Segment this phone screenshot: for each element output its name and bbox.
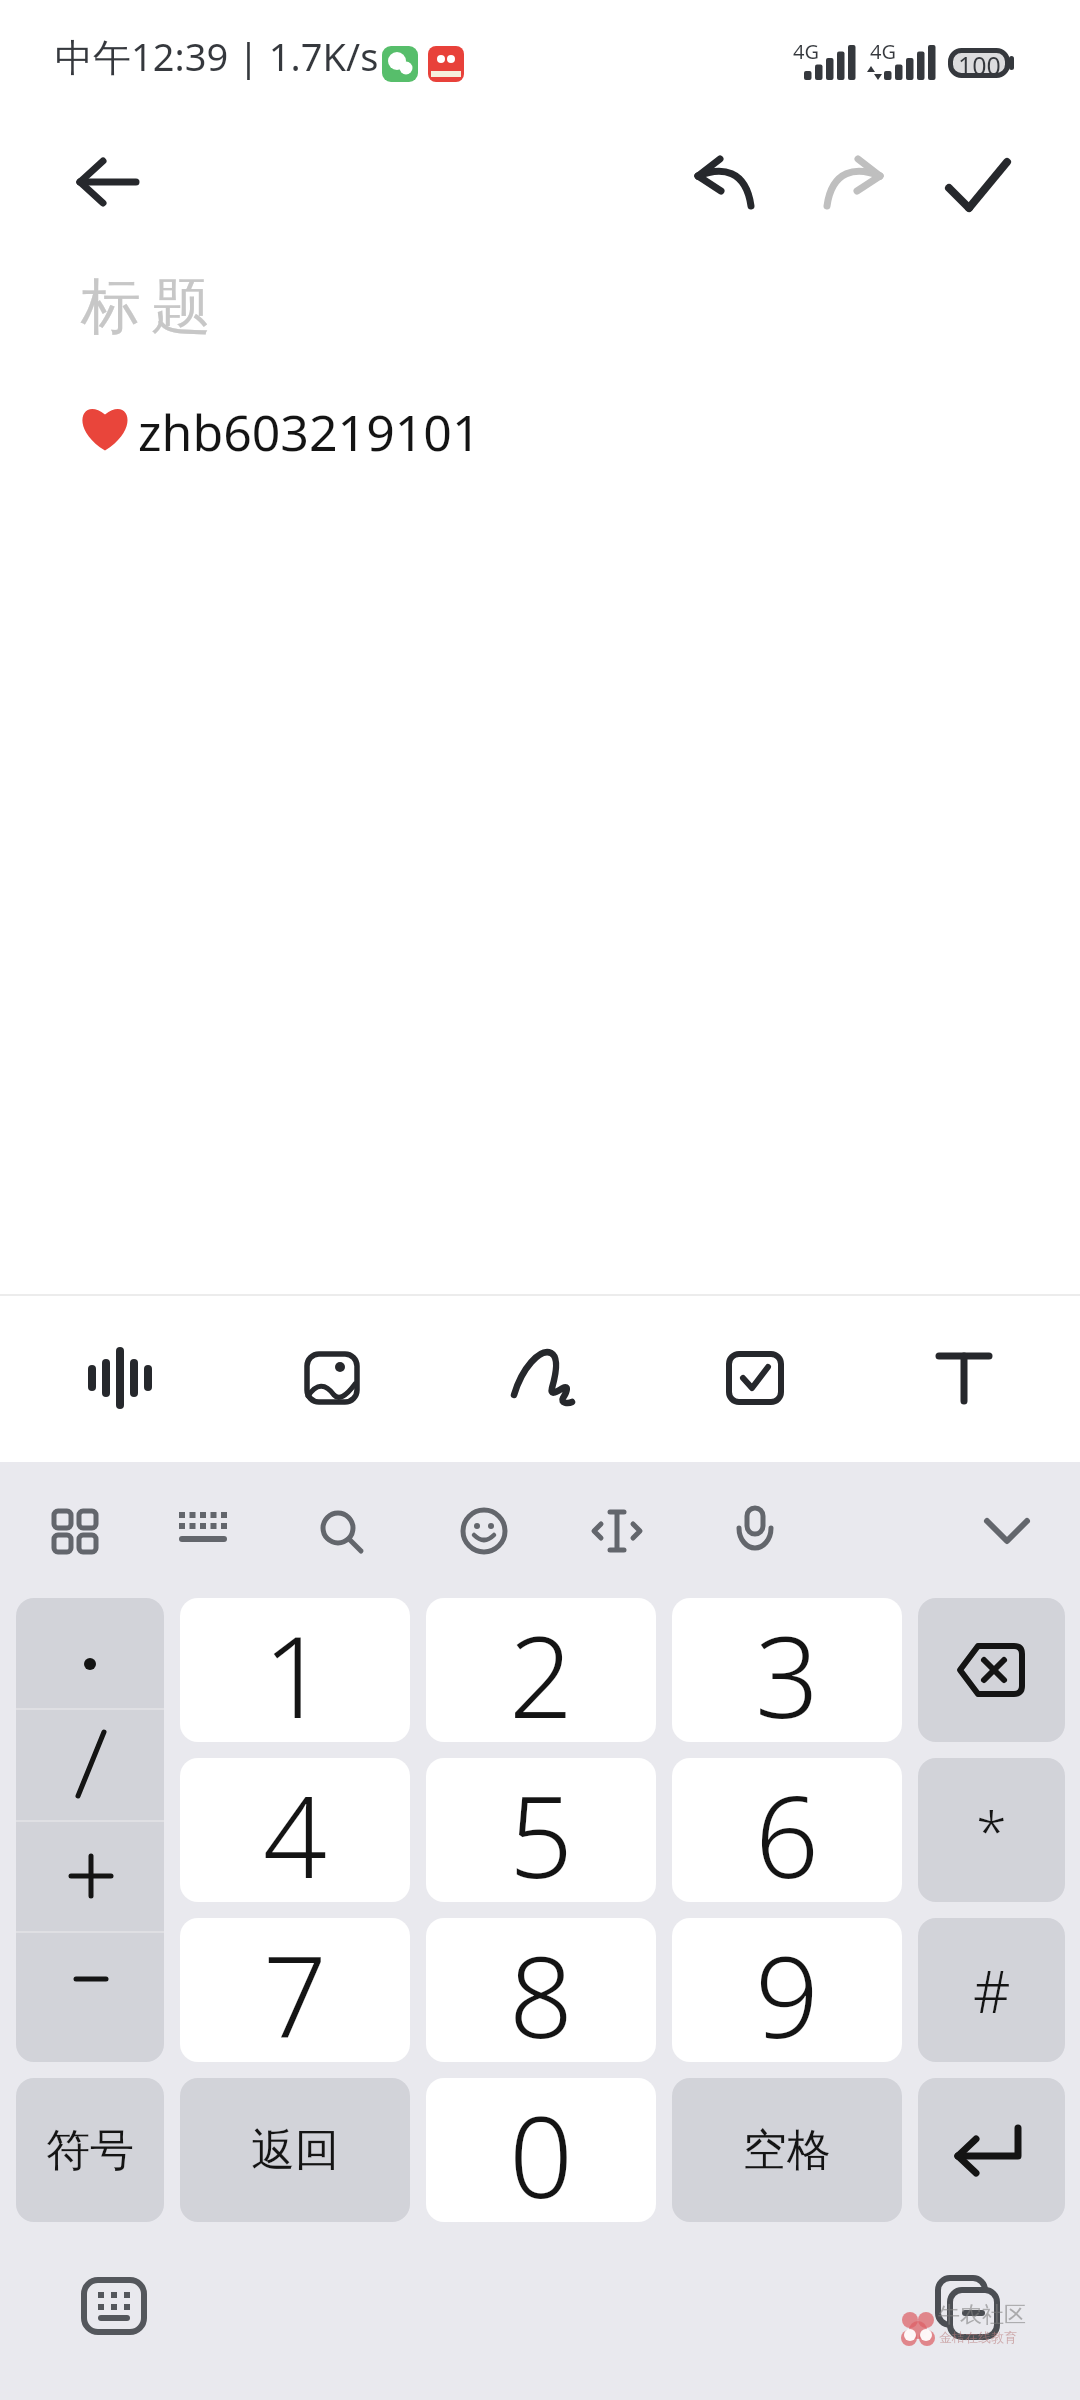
button[interactable]: [946, 158, 1010, 212]
staticText: 牛农社区: [938, 2301, 1026, 2329]
staticText: 4G: [870, 38, 896, 65]
button[interactable]: [984, 1517, 1030, 1545]
button[interactable]: [694, 156, 756, 210]
button[interactable]: [918, 2078, 1065, 2222]
button[interactable]: 9: [672, 1918, 902, 2062]
button[interactable]: [822, 156, 884, 210]
button[interactable]: 返回: [180, 2078, 410, 2222]
button[interactable]: [77, 158, 139, 206]
button[interactable]: 6: [672, 1758, 902, 1902]
button[interactable]: 空格: [672, 2078, 902, 2222]
button[interactable]: 5: [426, 1758, 656, 1902]
button[interactable]: [177, 1510, 229, 1552]
staticText: 金桔在线教育: [939, 2329, 1017, 2345]
button[interactable]: 4: [180, 1758, 410, 1902]
button[interactable]: [88, 1346, 152, 1410]
button[interactable]: [936, 1352, 992, 1404]
staticText: 8: [509, 1918, 573, 2062]
button[interactable]: [930, 2270, 1005, 2345]
button[interactable]: 3: [672, 1598, 902, 1742]
staticText: 6: [755, 1758, 819, 1902]
staticText: 符号: [46, 2123, 134, 2178]
button[interactable]: [52, 1509, 98, 1553]
button[interactable]: [918, 1598, 1065, 1742]
button[interactable]: [592, 1508, 642, 1554]
staticText: 7: [263, 1918, 327, 2062]
staticText: 标题: [76, 269, 216, 345]
button[interactable]: 1: [180, 1598, 410, 1742]
staticText: 空格: [743, 2123, 831, 2178]
button[interactable]: 0: [426, 2078, 656, 2222]
button[interactable]: [460, 1507, 508, 1555]
staticText: zhb603219101: [138, 398, 481, 466]
staticText: 3: [755, 1598, 819, 1742]
staticText: 返回: [251, 2123, 339, 2178]
staticText: #: [973, 1951, 1011, 2030]
button[interactable]: 7: [180, 1918, 410, 2062]
button[interactable]: 2: [426, 1598, 656, 1742]
staticText: 100: [958, 48, 1001, 78]
button[interactable]: *: [918, 1758, 1065, 1902]
button[interactable]: #: [918, 1918, 1065, 2062]
staticText: 中午12:39 | 1.7K/s: [55, 30, 379, 82]
staticText: 9: [755, 1918, 819, 2062]
staticText: 5: [509, 1758, 573, 1902]
staticText: 0: [509, 2078, 573, 2222]
staticText: 4G: [793, 38, 819, 65]
button[interactable]: [318, 1508, 366, 1556]
button[interactable]: [16, 1598, 164, 2062]
staticText: 4: [263, 1758, 327, 1902]
button[interactable]: 符号: [16, 2078, 164, 2222]
button[interactable]: [726, 1351, 784, 1405]
staticText: 1: [263, 1598, 327, 1742]
button[interactable]: [510, 1348, 576, 1410]
button[interactable]: [731, 1506, 779, 1554]
button[interactable]: [304, 1351, 360, 1405]
button[interactable]: 8: [426, 1918, 656, 2062]
staticText: 2: [509, 1598, 573, 1742]
staticText: *: [976, 1792, 1007, 1868]
button[interactable]: [81, 2277, 147, 2335]
